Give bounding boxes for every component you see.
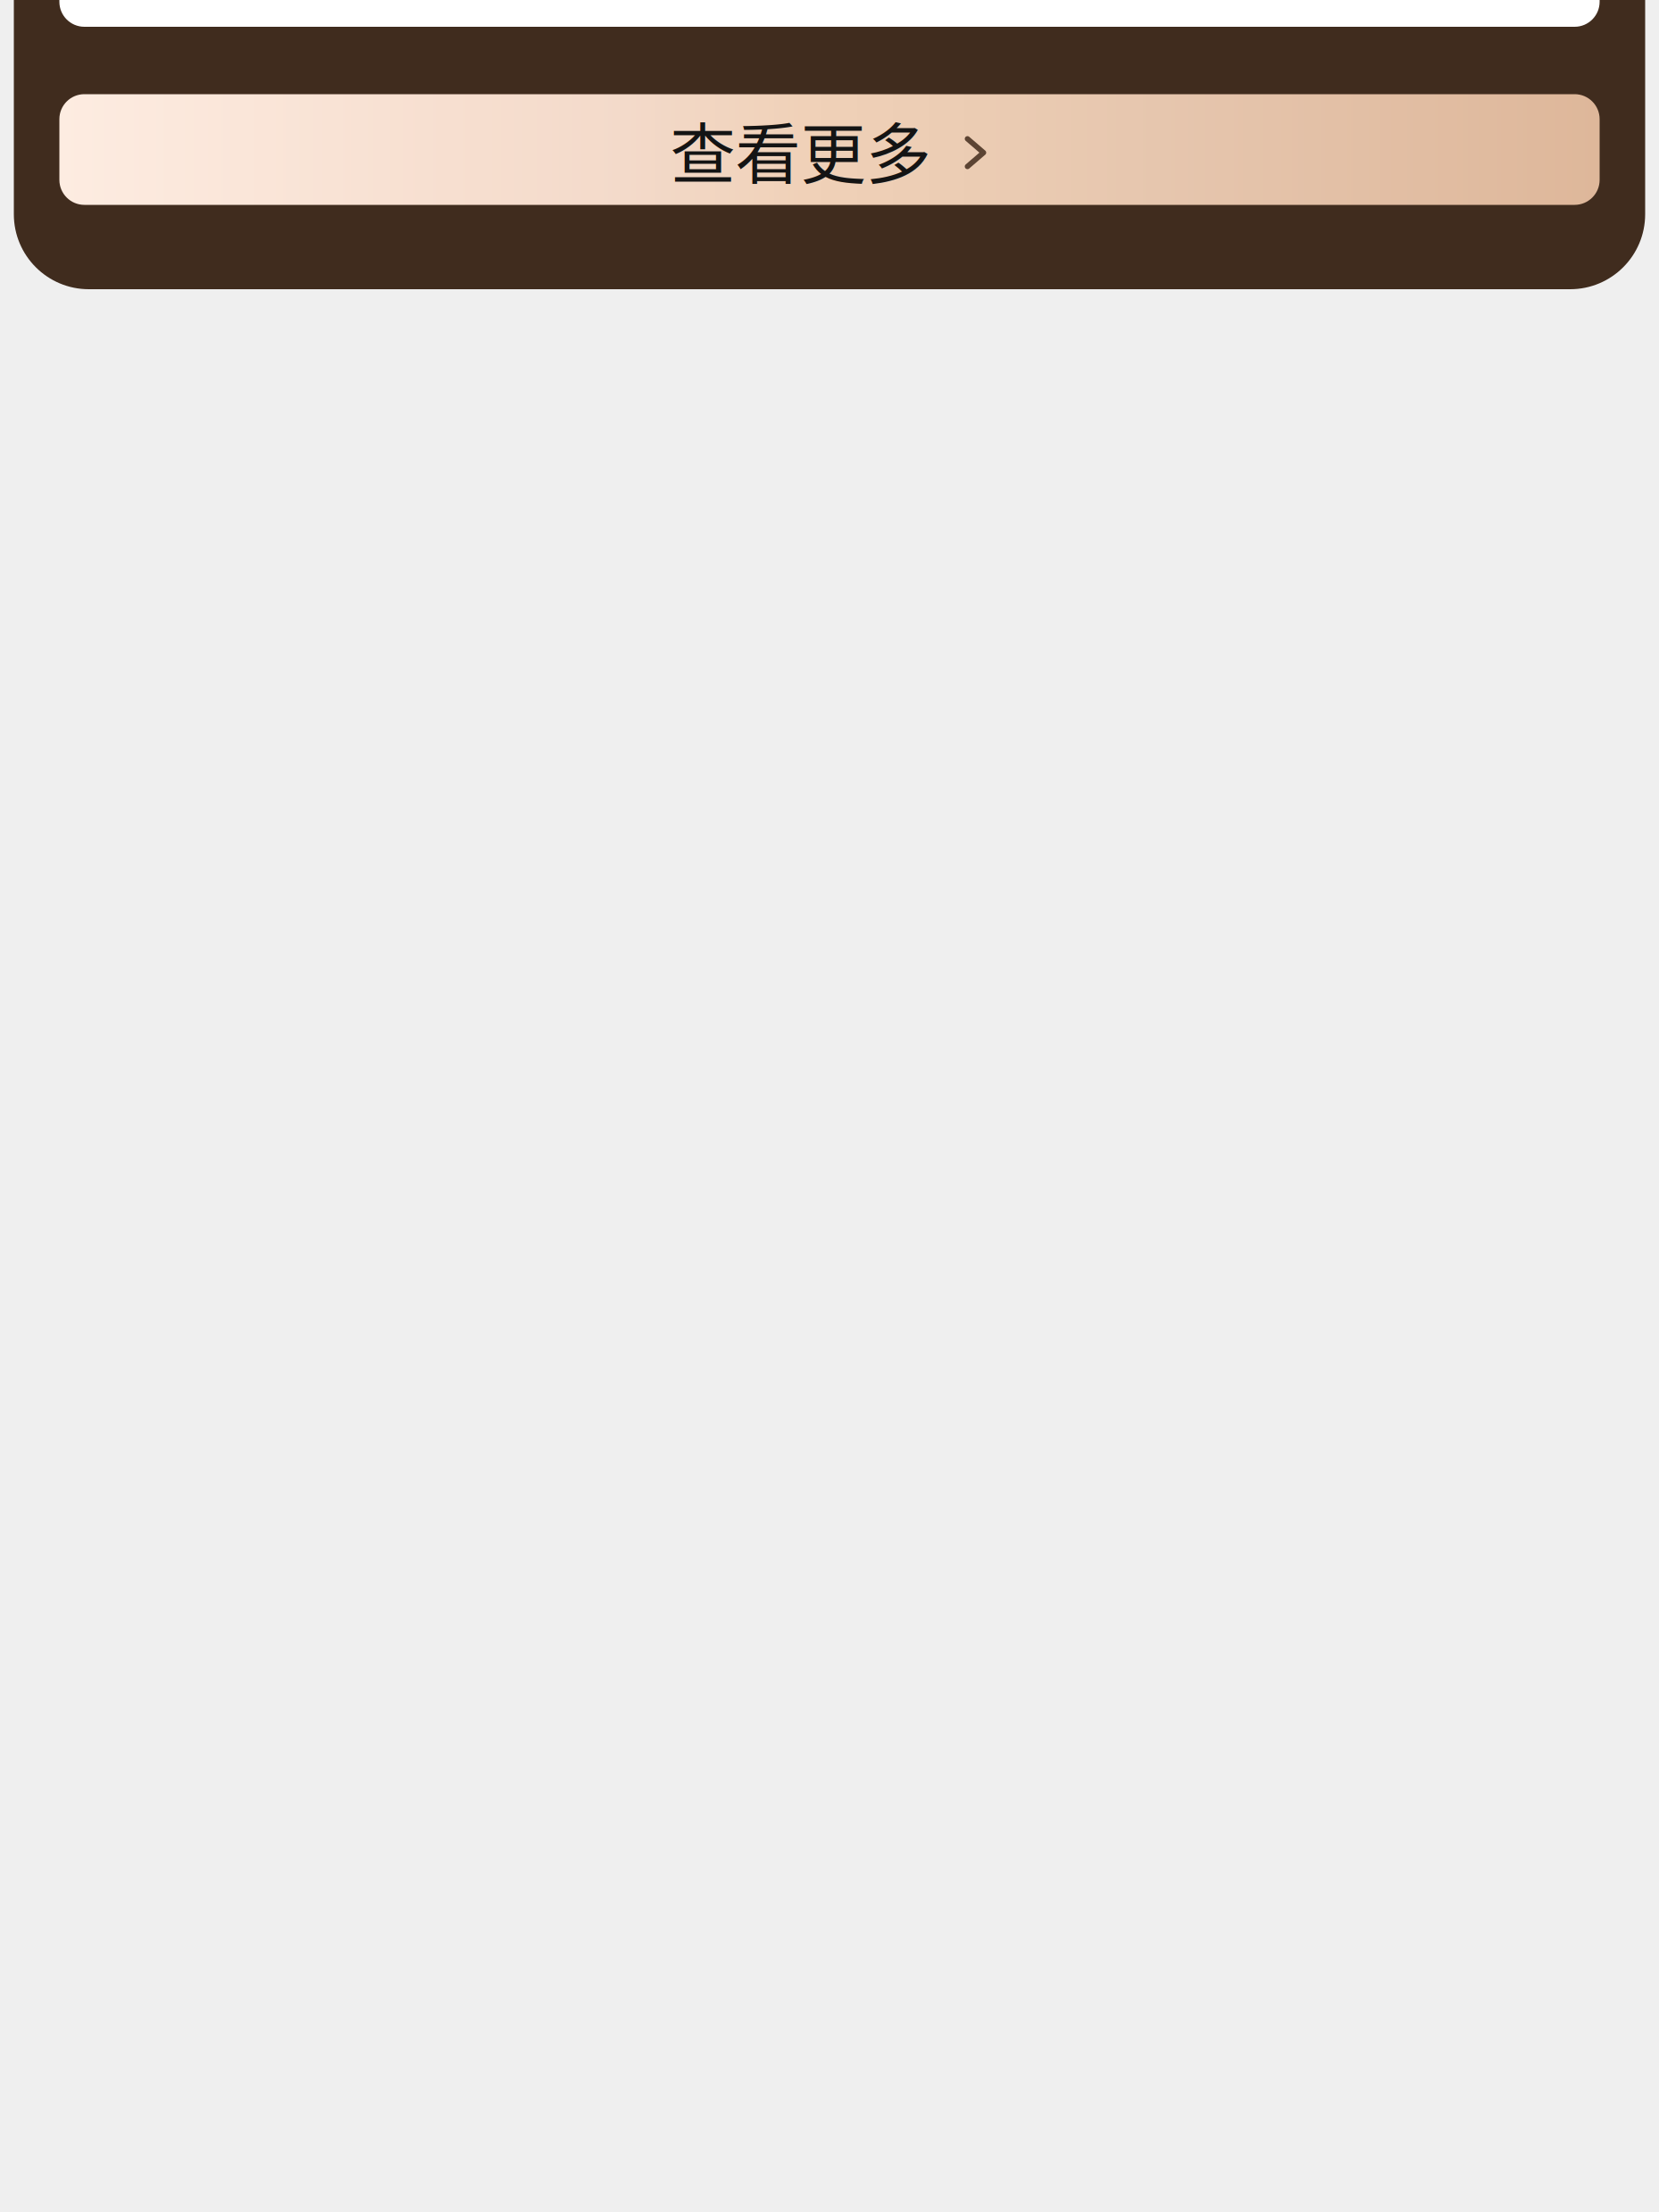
staticText: 查看更多 xyxy=(670,102,931,197)
button[interactable]: 查看更多 xyxy=(59,94,1600,205)
